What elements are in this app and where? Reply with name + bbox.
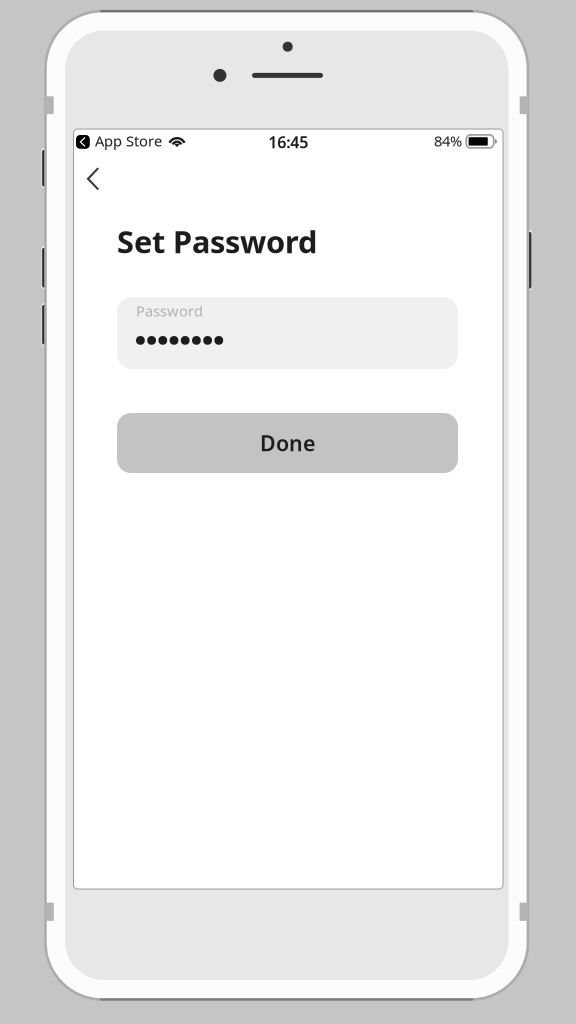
staticText: Password	[136, 301, 203, 320]
staticText: App Store	[95, 131, 162, 150]
staticText: Done	[260, 429, 315, 457]
staticText: 16:45	[268, 131, 308, 153]
staticText: 84%	[434, 131, 462, 150]
staticText: Set Password	[117, 221, 317, 262]
button[interactable]: Back	[76, 160, 119, 203]
button[interactable]: Done	[117, 413, 458, 473]
